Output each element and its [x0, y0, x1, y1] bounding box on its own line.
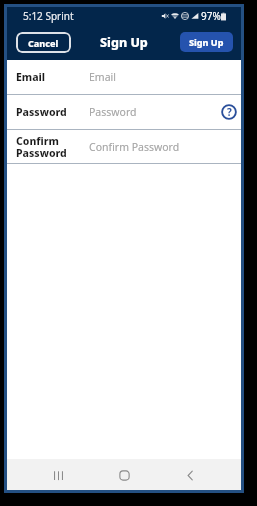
staticText: Sign Up — [189, 36, 224, 48]
staticText: 5:12 Sprint — [23, 9, 74, 23]
button[interactable]: Home — [110, 461, 138, 489]
button[interactable]: Cancel — [16, 32, 71, 53]
staticText: Cancel — [28, 37, 59, 49]
button[interactable]: Confirm Password — [7, 130, 241, 163]
staticText: Password — [89, 105, 220, 119]
button[interactable]: Email — [7, 60, 241, 94]
staticText: Confirm Password — [89, 140, 238, 154]
staticText: Email — [89, 70, 238, 84]
staticText: 97% — [201, 9, 221, 23]
staticText: Password — [16, 105, 89, 119]
button[interactable]: Sign Up — [180, 32, 233, 52]
button[interactable]: Password — [7, 95, 241, 129]
staticText: ? — [227, 105, 232, 119]
staticText: Email — [16, 70, 89, 84]
button[interactable]: Help — [220, 103, 238, 121]
button[interactable]: Recent apps — [44, 461, 72, 489]
button[interactable]: Back — [176, 461, 204, 489]
staticText: Sign Up — [100, 34, 148, 51]
staticText: Confirm Password — [16, 134, 89, 160]
